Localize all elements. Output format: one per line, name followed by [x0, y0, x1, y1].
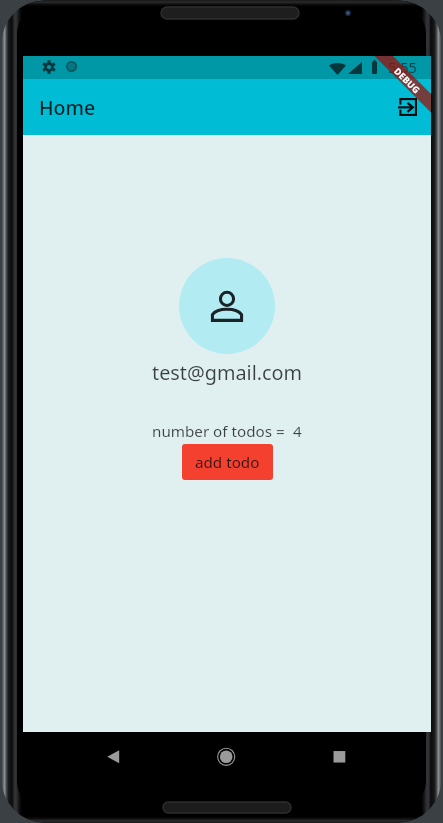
staticText: Home — [39, 94, 96, 121]
staticText: DEBUG — [391, 65, 422, 96]
button[interactable]: add todo — [182, 444, 273, 480]
staticText: number of todos = — [152, 421, 289, 442]
staticText: 5:55 — [388, 57, 417, 77]
staticText: test@gmail.com — [152, 359, 303, 386]
staticText: 4 — [289, 421, 302, 442]
button[interactable]: Recent apps — [315, 732, 363, 782]
button[interactable]: Logout — [385, 85, 429, 129]
button[interactable]: Back — [89, 732, 137, 782]
button[interactable]: Home — [202, 732, 250, 782]
staticText: add todo — [195, 452, 260, 473]
